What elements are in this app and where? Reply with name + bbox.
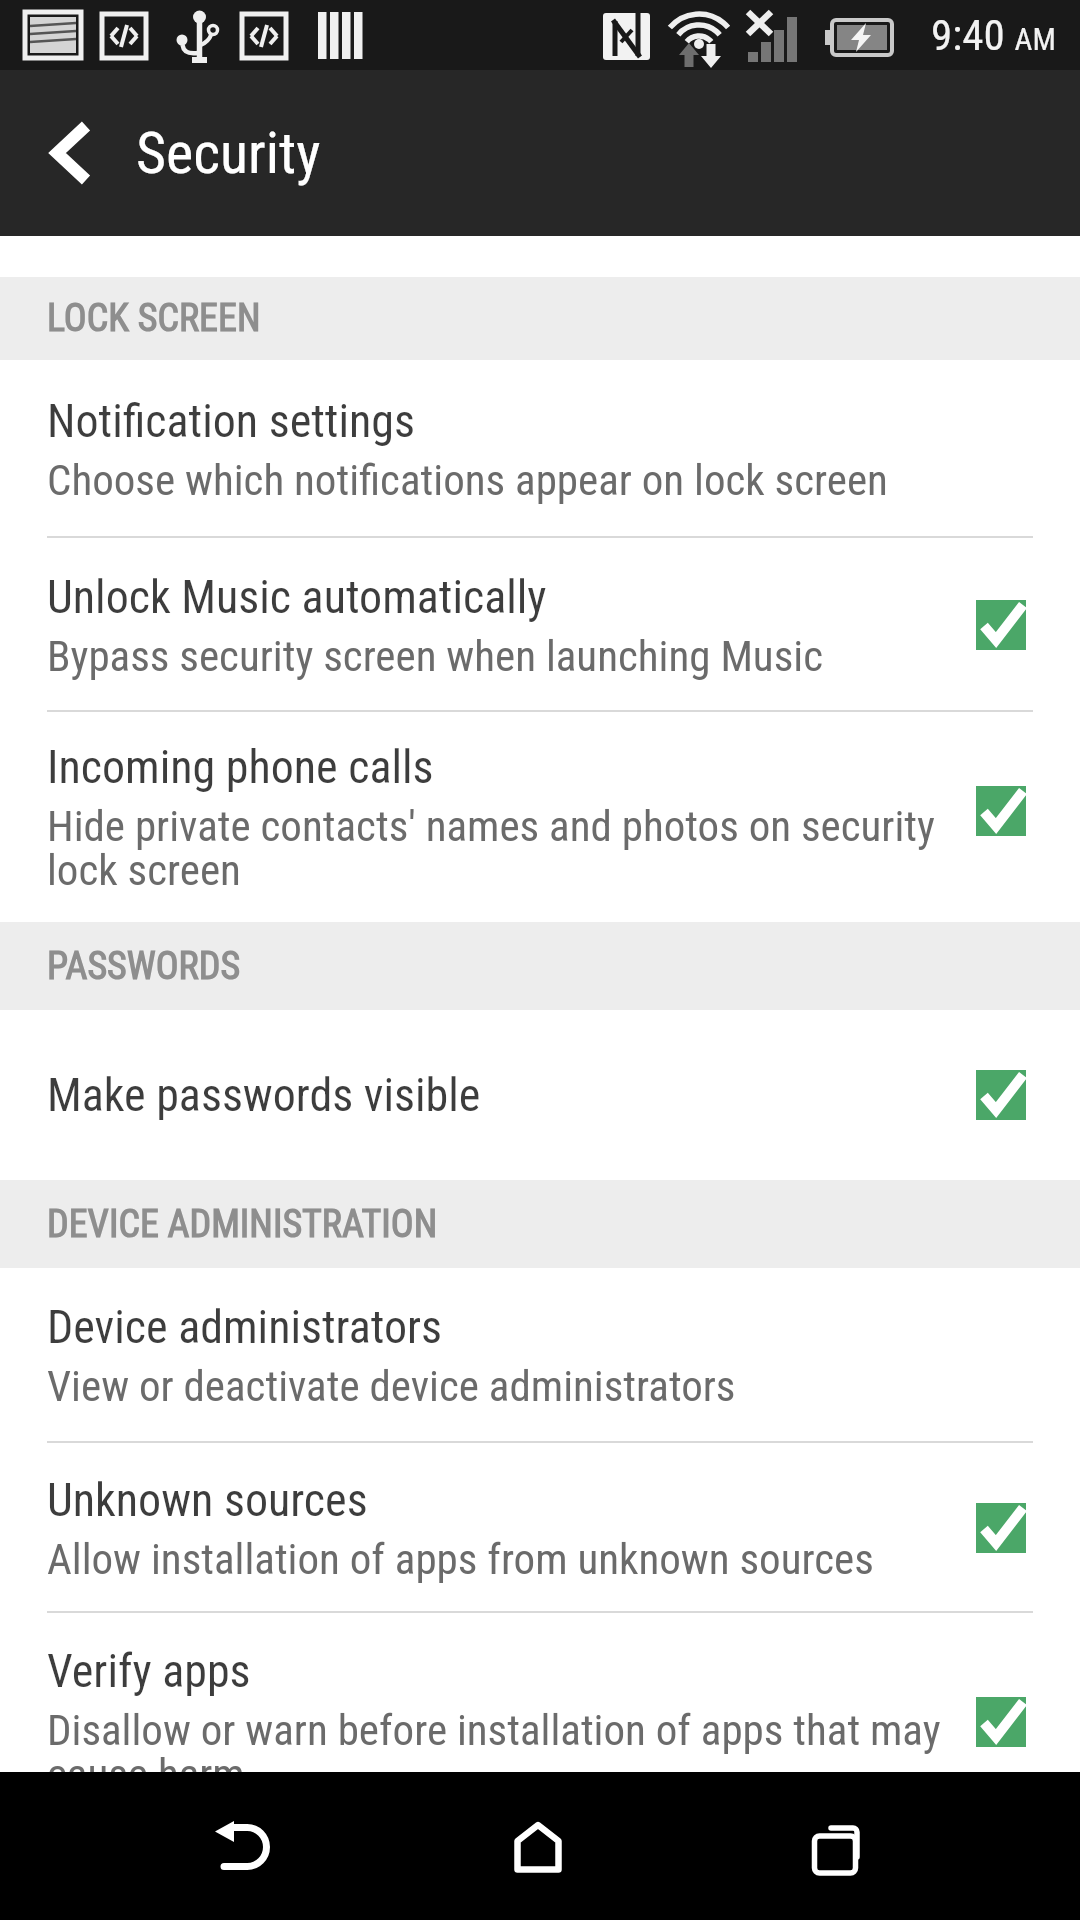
staticText: 9:40 AM [931,10,1056,60]
button[interactable]: Unknown sources [0,1443,1080,1613]
staticText: Verify apps [47,1644,251,1698]
staticText: Disallow or warn before installation of … [47,1705,941,1799]
staticText: LOCK SCREEN [47,296,261,341]
staticText: Make passwords visible [47,1068,481,1122]
staticText: DEVICE ADMINISTRATION [47,1202,438,1247]
staticText: Unlock Music automatically [47,570,547,624]
button[interactable]: Make passwords visible [0,1010,1080,1180]
button[interactable] [458,1772,618,1920]
staticText: Notification settings [47,394,415,448]
staticText: Hide private contacts' names and photos … [47,801,935,895]
button[interactable]: Device administrators [0,1268,1080,1443]
button[interactable]: Unlock Music automatically [0,538,1080,712]
staticText: Unknown sources [47,1473,368,1527]
staticText: Incoming phone calls [47,740,434,794]
button[interactable] [759,1772,919,1920]
staticText: Choose which notifications appear on loc… [47,455,888,505]
button[interactable] [20,103,120,203]
staticText: Security [136,119,321,187]
staticText: Device administrators [47,1300,442,1354]
staticText: Allow installation of apps from unknown … [47,1534,874,1584]
staticText: View or deactivate device administrators [47,1361,736,1411]
staticText: PASSWORDS [47,944,241,989]
button[interactable]: Incoming phone calls [0,712,1080,922]
button[interactable] [162,1772,322,1920]
button[interactable]: Notification settings [0,360,1080,538]
button[interactable]: Verify apps [0,1613,1080,1830]
staticText: Bypass security screen when launching Mu… [47,631,823,681]
